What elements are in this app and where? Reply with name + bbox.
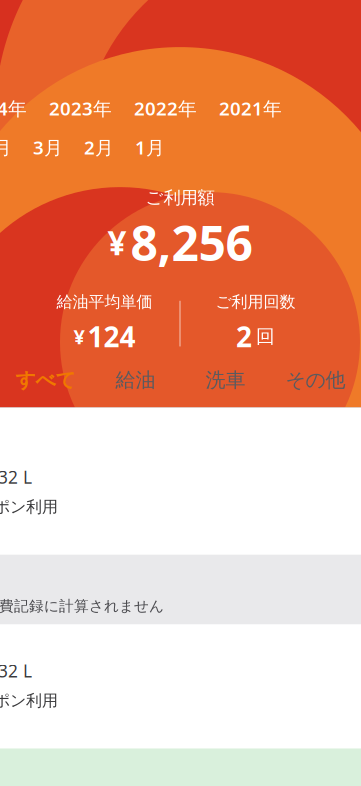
- staticText: 2: [236, 318, 252, 355]
- button[interactable]: 2024年: [0, 96, 27, 121]
- staticText: 2021年: [219, 96, 282, 121]
- staticText: レギュラー / 20.32 L: [0, 659, 32, 682]
- button[interactable]: その他: [270, 365, 360, 395]
- staticText: この利用履歴は燃費記録に計算されません: [0, 597, 164, 615]
- button[interactable]: 3月: [33, 135, 63, 160]
- button[interactable]: 2022年: [134, 96, 197, 121]
- staticText: 回: [256, 325, 275, 348]
- staticText: 利用履歴: [130, 44, 230, 76]
- staticText: 2円 / L引きクーポン利用: [0, 496, 58, 517]
- staticText: ご利用額: [145, 187, 214, 208]
- staticText: 2023年: [49, 96, 112, 121]
- button[interactable]: 2023年: [49, 96, 112, 121]
- staticText: 2022年: [134, 96, 197, 121]
- staticText: 2円 / L引きクーポン利用: [0, 689, 58, 711]
- staticText: 2024年: [0, 96, 27, 121]
- staticText: 8,256: [130, 210, 252, 274]
- staticText: ¥: [73, 323, 84, 350]
- staticText: すべて: [15, 368, 75, 392]
- staticText: ご利用回数: [216, 292, 296, 312]
- button[interactable]: 2021年: [219, 96, 282, 121]
- staticText: 3月: [33, 135, 63, 160]
- staticText: ¥: [107, 220, 126, 264]
- staticText: 給油平均単価: [56, 292, 152, 312]
- staticText: レギュラー / 20.32 L: [0, 466, 32, 489]
- button[interactable]: 2月: [84, 135, 114, 160]
- staticText: 4月: [0, 135, 12, 160]
- button[interactable]: 給油: [90, 365, 180, 395]
- staticText: 給油: [115, 368, 155, 392]
- staticText: その他: [285, 368, 345, 392]
- button[interactable]: 4月: [0, 135, 12, 160]
- button[interactable]: 1月: [135, 135, 165, 160]
- staticText: 洗車: [205, 368, 245, 392]
- button[interactable]: すべて: [0, 365, 90, 395]
- staticText: 2月: [84, 135, 114, 160]
- staticText: 1月: [135, 135, 165, 160]
- staticText: 124: [87, 318, 135, 355]
- button[interactable]: 洗車: [180, 365, 270, 395]
